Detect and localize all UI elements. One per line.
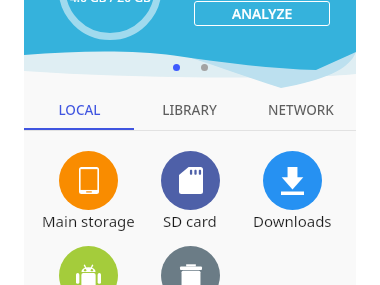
staticText: SD card bbox=[163, 211, 217, 231]
staticText: LIBRARY bbox=[162, 101, 217, 119]
button[interactable]: Main storage bbox=[37, 151, 139, 231]
staticText: 4.6 GB / 20 GB bbox=[70, 0, 151, 5]
staticText: NETWORK bbox=[268, 101, 334, 119]
staticText: LOCAL bbox=[58, 101, 101, 119]
button[interactable]: NETWORK bbox=[245, 93, 356, 131]
button[interactable]: LOCAL bbox=[24, 93, 134, 131]
staticText: ANALYZE bbox=[232, 4, 293, 23]
staticText: Downloads bbox=[253, 211, 332, 231]
button[interactable]: Trash bbox=[139, 246, 241, 285]
button[interactable]: LIBRARY bbox=[134, 93, 245, 131]
button[interactable]: ANALYZE bbox=[194, 1, 330, 26]
button[interactable]: Apps bbox=[37, 246, 139, 285]
button[interactable]: Downloads bbox=[241, 151, 343, 231]
button[interactable]: SD card bbox=[139, 151, 241, 231]
staticText: Main storage bbox=[42, 211, 135, 231]
